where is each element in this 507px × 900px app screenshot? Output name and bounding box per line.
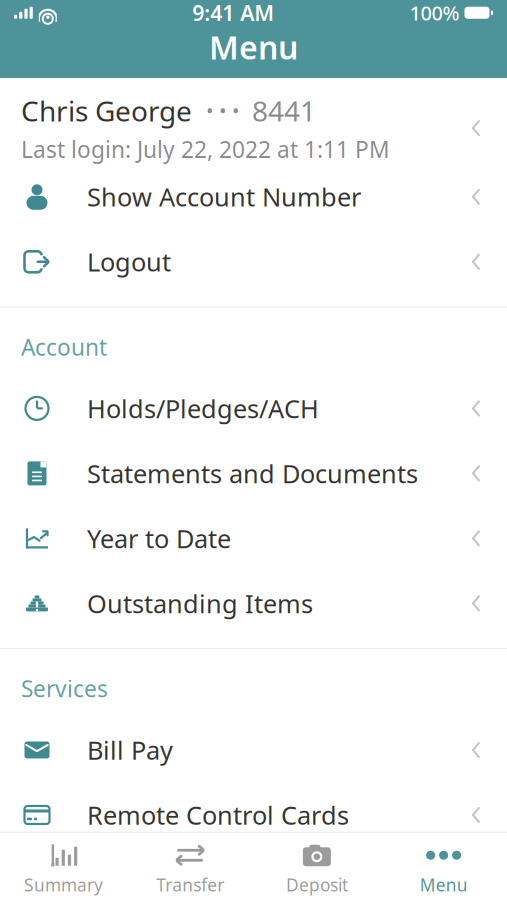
staticText: Outstanding Items <box>87 587 313 620</box>
staticText: Remote Control Cards <box>87 798 349 832</box>
button[interactable]: Menu <box>380 833 507 900</box>
staticText: Chris George <box>21 92 192 129</box>
staticText: Last login: July 22, 2022 at 1:11 PM <box>21 134 390 164</box>
staticText: Deposit <box>286 873 348 896</box>
staticText: • • • <box>206 97 240 124</box>
button[interactable]: Bill Pay <box>0 717 507 782</box>
staticText: Logout <box>87 245 171 279</box>
button[interactable]: Outstanding Items <box>0 571 507 636</box>
staticText: Year to Date <box>87 522 231 555</box>
button[interactable]: Chris George <box>0 78 507 164</box>
staticText: Menu <box>420 873 468 896</box>
staticText: Summary <box>24 873 103 896</box>
staticText: Services <box>21 673 108 703</box>
button[interactable]: Remote Control Cards <box>0 782 507 847</box>
staticText: 100% <box>409 0 459 26</box>
button[interactable]: Summary <box>0 833 127 900</box>
button[interactable]: Deposit <box>253 833 380 900</box>
staticText: Holds/Pledges/ACH <box>87 392 319 425</box>
staticText: Menu <box>209 26 298 68</box>
button[interactable]: Year to Date <box>0 506 507 571</box>
staticText: 8441 <box>252 92 316 129</box>
staticText: Transfer <box>156 873 224 896</box>
staticText: Show Account Number <box>87 180 361 214</box>
button[interactable]: Show Account Number <box>0 164 507 229</box>
staticText: Bill Pay <box>87 733 173 767</box>
staticText: 9:41 AM <box>192 0 274 27</box>
staticText: Statements and Documents <box>87 457 418 490</box>
button[interactable]: Logout <box>0 229 507 294</box>
button[interactable]: Statements and Documents <box>0 441 507 506</box>
button[interactable]: Transfer <box>127 833 254 900</box>
button[interactable]: Holds/Pledges/ACH <box>0 376 507 441</box>
staticText: Account <box>21 332 107 362</box>
